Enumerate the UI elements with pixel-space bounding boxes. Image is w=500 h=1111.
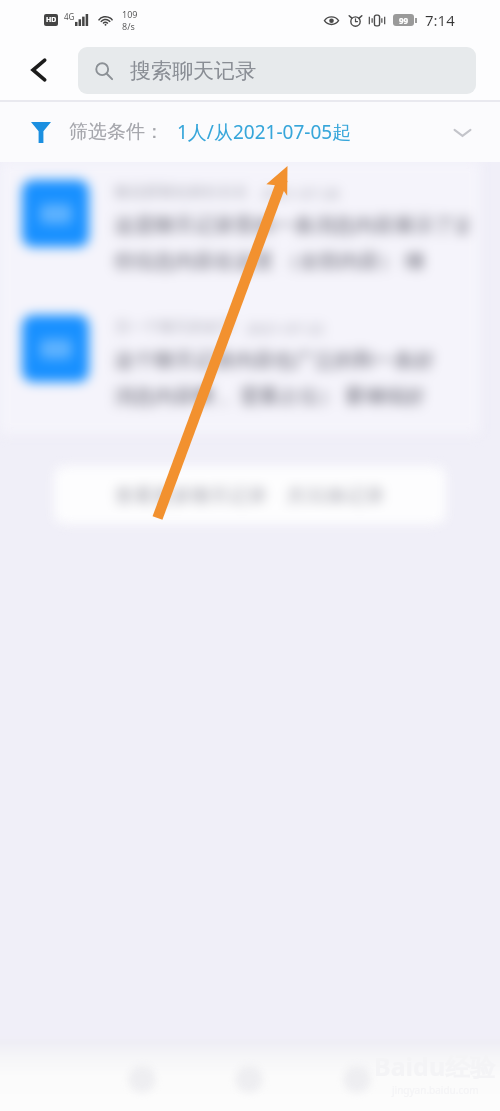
button[interactable]: Navigation item: [223, 1053, 275, 1105]
staticText: 7:14: [425, 10, 455, 30]
staticText: HD: [46, 15, 57, 25]
button[interactable]: Back: [0, 40, 78, 100]
button[interactable]: Navigation item: [116, 1053, 168, 1105]
staticText: 4G: [64, 11, 75, 22]
button[interactable]: 搜索聊天记录: [78, 47, 476, 94]
staticText: 消息内容啊， 需要占位） 要继续好: [114, 382, 425, 409]
button[interactable]: 筛选条件：: [0, 100, 500, 162]
staticText: 8/s: [122, 20, 135, 32]
staticText: 1人/从2021-07-05起: [177, 119, 352, 145]
staticText: 99: [399, 15, 409, 26]
button[interactable]: 另一个聊天的名字: [0, 314, 480, 434]
button[interactable]: 微信群聊名称长长长: [0, 179, 480, 306]
staticText: 筛选条件：: [69, 120, 164, 144]
staticText: 搜索聊天记录: [130, 58, 256, 84]
staticText: 微信群聊名称长长长: [114, 183, 249, 202]
staticText: 另一个聊天的名字: [114, 318, 234, 337]
button[interactable]: 查看更多聊天记录 共32条记录: [54, 466, 446, 524]
button[interactable]: Navigation item: [331, 1053, 383, 1105]
staticText: 查看更多聊天记录 共32条记录: [115, 482, 385, 508]
staticText: 这是聊天记录里的一条消息内容展示了这: [114, 213, 468, 238]
staticText: 这个聊天记录内容也广泛的和一条好: [114, 348, 434, 373]
staticText: 109: [122, 8, 138, 20]
staticText: 2021-07-22: [246, 318, 325, 338]
staticText: 些信息内容在这里 （全部内容） 继: [114, 247, 425, 274]
staticText: 2021-07-28: [261, 183, 340, 203]
